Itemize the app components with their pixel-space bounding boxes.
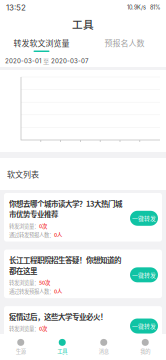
- staticText: 我的: [140, 347, 150, 355]
- staticText: 81%: [150, 4, 160, 11]
- button[interactable]: 消息: [83, 334, 124, 360]
- button[interactable]: 长江工程职院招生答疑！你想知道的都在这里: [4, 250, 162, 298]
- staticText: 工具: [57, 347, 67, 355]
- button[interactable]: 一键转发: [130, 267, 158, 282]
- staticText: 0人: [54, 333, 62, 341]
- staticText: 软文列表: [7, 168, 39, 180]
- staticText: 50次: [39, 279, 50, 286]
- staticText: 消息: [99, 347, 109, 355]
- button[interactable]: 你想去哪个城市读大学？13大热门城市优势专业推荐: [4, 193, 162, 242]
- button[interactable]: 预报名人数: [83, 33, 166, 55]
- staticText: 疫情过后，这些大学专业必火！: [9, 311, 107, 322]
- staticText: 转发浏览量：: [9, 324, 39, 332]
- button[interactable]: 疫情过后，这些大学专业必火！: [4, 306, 162, 344]
- button[interactable]: 生源: [0, 334, 41, 360]
- button[interactable]: 一键转发: [130, 211, 158, 226]
- button[interactable]: 转发软文浏览量: [0, 33, 83, 55]
- staticText: 长江工程职院招生答疑！你想知道的都在这里: [9, 255, 121, 276]
- staticText: 0人: [54, 287, 62, 295]
- staticText: 0人: [54, 231, 62, 238]
- staticText: 2020-03-07: [51, 57, 88, 65]
- staticText: 一键转发: [132, 322, 156, 330]
- staticText: 转发软文浏览量: [13, 37, 69, 48]
- button[interactable]: 2020-03-01: [0, 55, 166, 67]
- staticText: 2020-03-01: [5, 57, 41, 65]
- staticText: 你想去哪个城市读大学？13大热门城市优势专业推荐: [9, 198, 122, 220]
- staticText: 0次: [39, 324, 47, 332]
- staticText: 工具: [72, 16, 94, 32]
- staticText: 一键转发: [132, 271, 156, 279]
- button[interactable]: 我的: [124, 334, 166, 360]
- staticText: 至: [43, 57, 49, 65]
- staticText: 转发浏览量：: [9, 279, 39, 286]
- staticText: 通过转发预报人数：: [9, 231, 54, 238]
- staticText: 预报名人数: [104, 37, 144, 48]
- staticText: 10.9K/s: [127, 4, 146, 11]
- button[interactable]: 工具: [41, 334, 83, 360]
- staticText: 13:52: [6, 3, 26, 12]
- button[interactable]: 一键转发: [130, 318, 158, 333]
- staticText: 转发浏览量：: [9, 222, 39, 230]
- staticText: 0次: [39, 222, 47, 230]
- staticText: 一键转发: [132, 214, 156, 222]
- staticText: 生源: [16, 347, 26, 355]
- staticText: 通过转发预报人数：: [9, 287, 54, 295]
- staticText: 通过转发预报人数：: [9, 333, 54, 341]
